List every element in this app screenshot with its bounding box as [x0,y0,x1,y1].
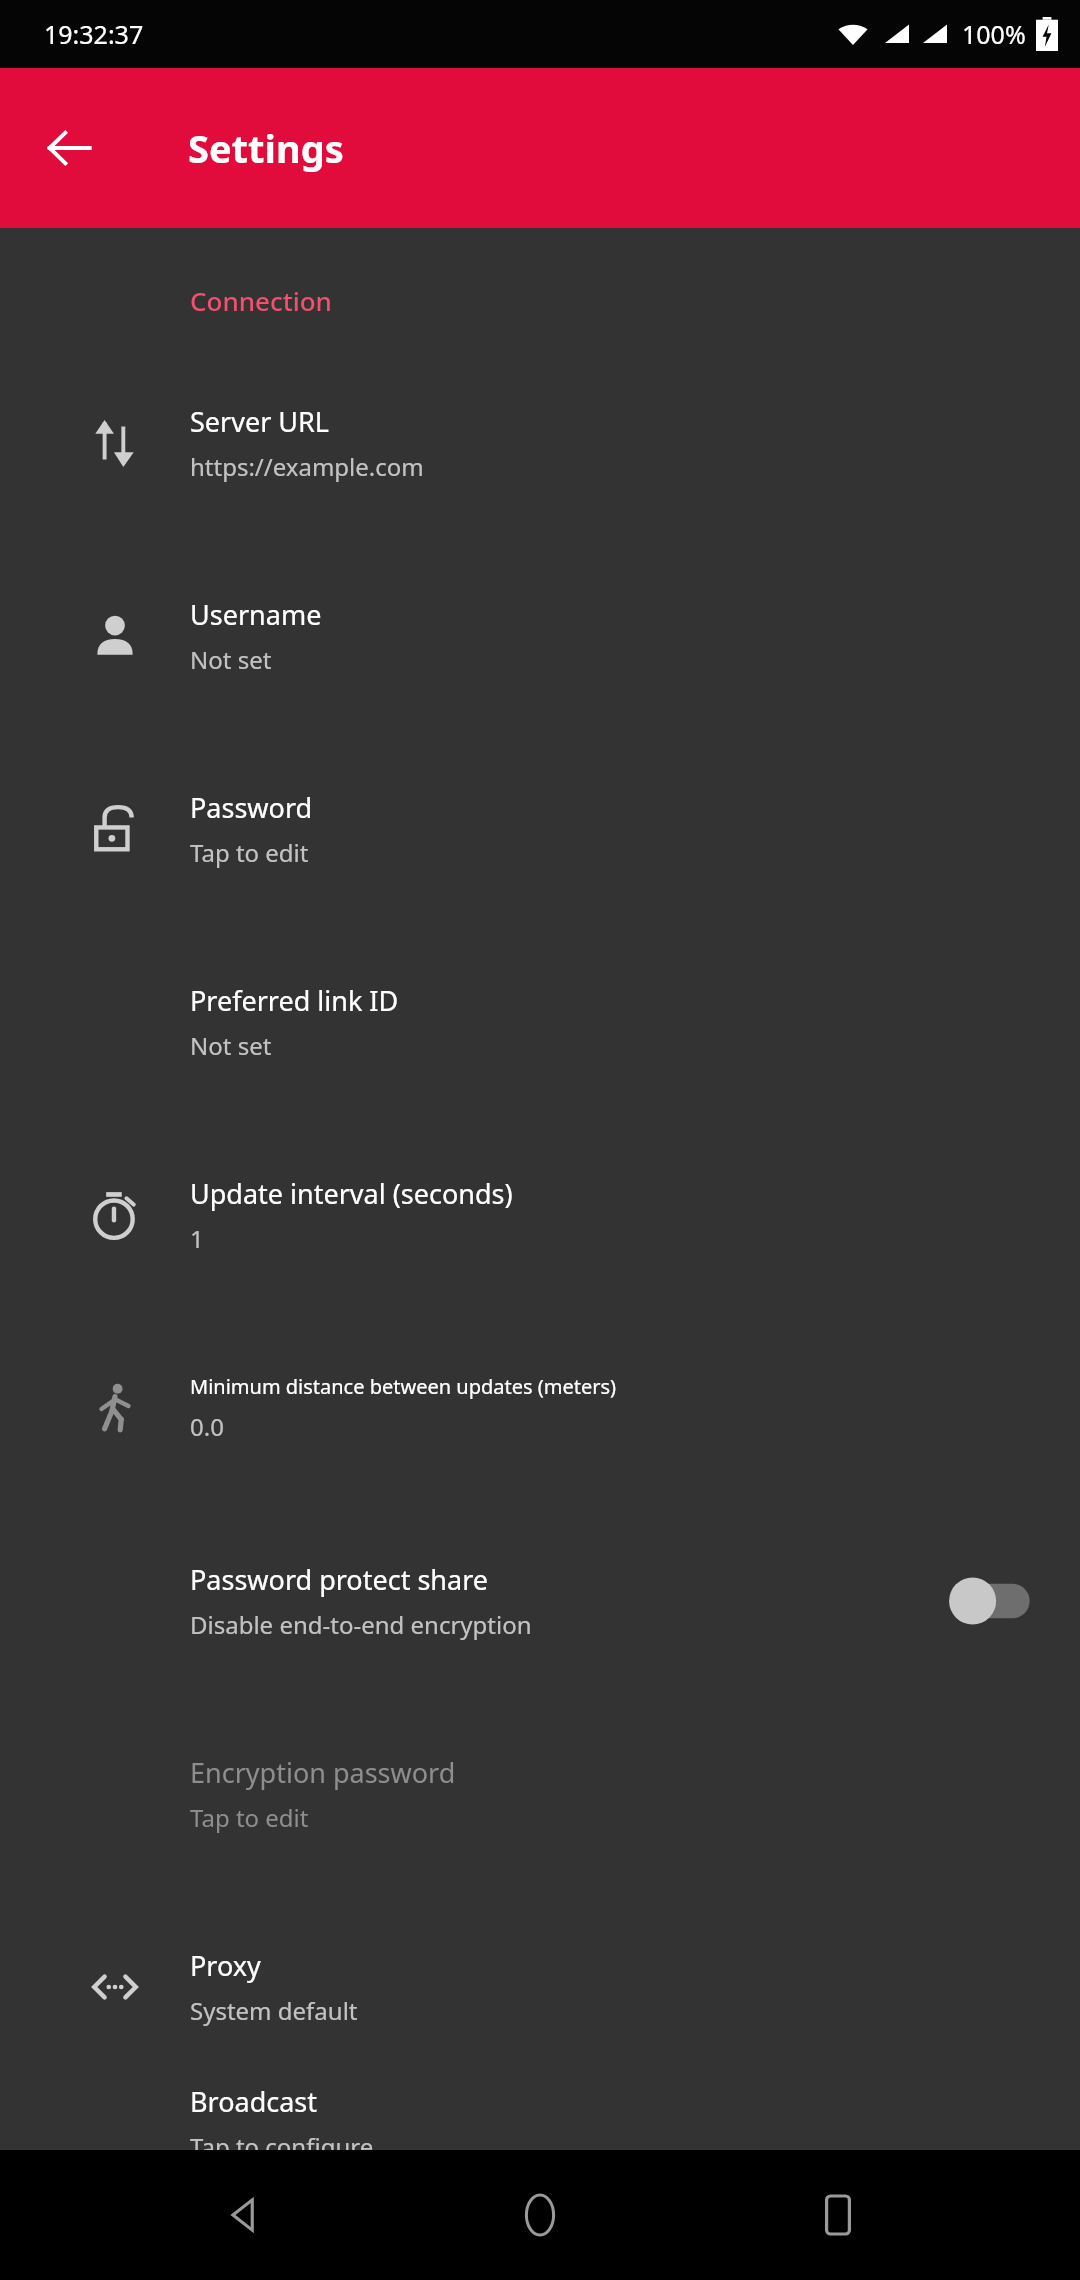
button[interactable]: Password protect share [0,1504,1080,1697]
button[interactable]: Back [26,105,112,191]
staticText: Minimum distance between updates (meters… [190,1373,617,1400]
button[interactable]: Minimum distance between updates (meters… [0,1311,1080,1504]
staticText: Settings [188,122,344,174]
staticText: Update interval (seconds) [190,1175,513,1212]
button[interactable]: Back [188,2160,298,2270]
staticText: Server URL [190,403,329,440]
staticText: Not set [190,1029,272,1062]
staticText: Broadcast [190,2083,318,2120]
staticText: Tap to edit [190,836,309,869]
button[interactable]: Recent apps [783,2160,893,2270]
staticText: 0.0 [190,1410,224,1443]
button[interactable]: Encryption password [0,1697,1080,1890]
staticText: Encryption password [190,1754,456,1791]
staticText: Tap to edit [190,1801,309,1834]
staticText: Not set [190,643,272,676]
button[interactable]: Home [485,2160,595,2270]
staticText: System default [190,1994,358,2027]
staticText: Disable end-to-end encryption [190,1608,532,1641]
staticText: 19:32:37 [44,17,144,51]
staticText: https://example.com [190,450,424,483]
staticText: Connection [190,283,332,318]
button[interactable]: Preferred link ID [0,925,1080,1118]
button[interactable]: Username [0,539,1080,732]
button[interactable]: Server URL [0,346,1080,539]
button[interactable]: Proxy [0,1890,1080,2083]
staticText: 100% [962,17,1026,51]
button[interactable]: Update interval (seconds) [0,1118,1080,1311]
staticText: Tap to configure [190,2130,374,2150]
staticText: 1 [190,1222,204,1255]
staticText: Preferred link ID [190,982,399,1019]
staticText: Password [190,789,313,826]
button[interactable]: Password [0,732,1080,925]
staticText: Username [190,596,322,633]
staticText: Proxy [190,1947,261,1984]
button[interactable]: Broadcast [0,2083,1080,2150]
staticText: Password protect share [190,1561,488,1598]
